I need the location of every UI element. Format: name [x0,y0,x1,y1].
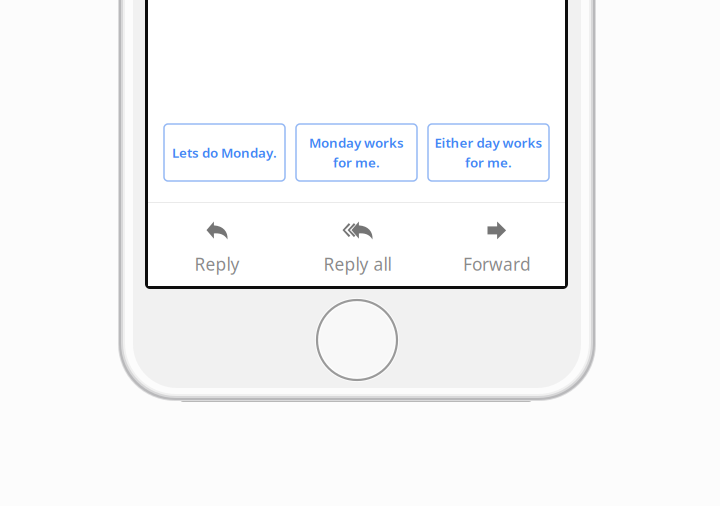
button[interactable]: Either day works [428,124,549,181]
button[interactable]: Lets do Monday. [164,124,285,181]
button[interactable]: Monday works [296,124,417,181]
staticText: Lets do Monday. [172,144,277,161]
staticText: Forward [463,252,531,275]
staticText: Reply all [323,252,391,275]
staticText: Monday works [309,134,404,151]
staticText: Reply [194,252,239,275]
button[interactable]: Forward [429,202,565,286]
button[interactable]: Reply all [286,202,429,286]
staticText: Either day works [434,134,542,151]
button[interactable]: Reply [148,202,286,286]
staticText: for me. [333,153,380,171]
staticText: for me. [465,153,512,171]
